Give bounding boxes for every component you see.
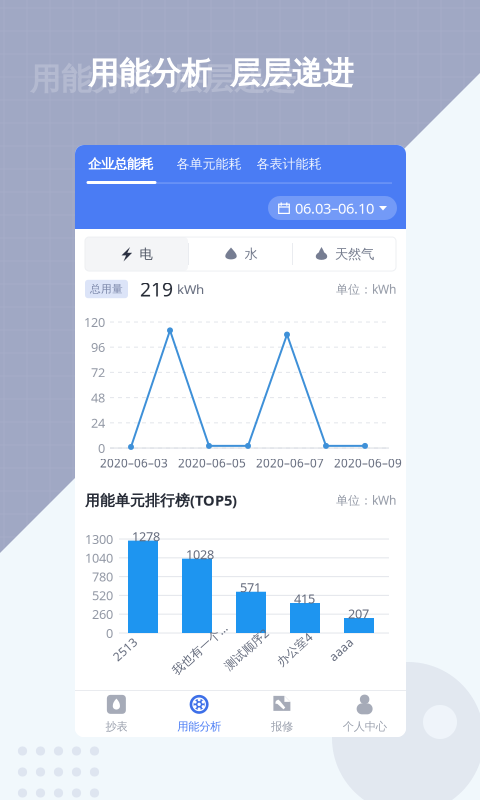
staticText: 207 (348, 605, 369, 622)
staticText: 天然气 (335, 246, 374, 262)
staticText: 96 (91, 339, 105, 356)
button[interactable]: 抄表 (75, 690, 158, 737)
button[interactable]: 报修 (240, 690, 323, 737)
staticText: 各表计能耗 (256, 156, 321, 172)
staticText: 2020–06–07 (256, 455, 324, 471)
staticText: 260 (92, 606, 113, 623)
button[interactable]: 06.03–06.10 (268, 196, 397, 220)
staticText: 1278 (132, 528, 160, 545)
staticText: 1028 (186, 546, 214, 563)
staticText: 我也有一个… (165, 641, 234, 657)
staticText: 用能单元排行榜(TOP5) (85, 490, 237, 510)
staticText: 各单元能耗 (176, 156, 241, 172)
staticText: 219 (140, 276, 173, 302)
staticText: 办公室4 (273, 641, 316, 657)
staticText: 520 (92, 587, 113, 604)
button[interactable]: 电 (85, 237, 188, 271)
staticText: 06.03–06.10 (295, 198, 374, 218)
button[interactable]: 各表计能耗 (256, 152, 324, 176)
staticText: 水 (244, 246, 257, 262)
button[interactable]: 天然气 (293, 237, 396, 271)
staticText: 415 (294, 590, 315, 607)
staticText: 单位：kWh (336, 492, 396, 508)
staticText: 120 (84, 313, 105, 331)
button[interactable]: 个人中心 (323, 690, 406, 737)
staticText: 0 (98, 439, 105, 457)
staticText: 抄表 (105, 719, 127, 734)
staticText: 个人中心 (343, 719, 387, 734)
staticText: 报修 (271, 719, 293, 734)
staticText: 2020–06–05 (178, 455, 246, 471)
staticText: 571 (240, 579, 261, 596)
staticText: 780 (92, 568, 113, 585)
staticText: 用能分析 层层递进 (88, 54, 354, 93)
staticText: 单位：kWh (336, 281, 396, 297)
staticText: 72 (91, 364, 105, 381)
staticText: 48 (91, 389, 105, 406)
staticText: 2020–06–09 (334, 455, 402, 471)
staticText: 1040 (85, 549, 113, 566)
staticText: 总用量 (90, 282, 123, 296)
button[interactable]: 各单元能耗 (176, 152, 244, 176)
staticText: 企业总能耗 (88, 156, 153, 172)
staticText: 24 (91, 414, 105, 431)
staticText: aaaa (327, 641, 355, 657)
staticText: 用能分析 层层递进 (30, 60, 296, 99)
staticText: 用能分析 (177, 719, 221, 734)
button[interactable]: 用能分析 (158, 690, 241, 737)
staticText: 测试顺序2 (219, 641, 274, 657)
staticText: 1300 (85, 530, 113, 548)
staticText: 2020–06–03 (100, 455, 168, 471)
staticText: 2513 (111, 641, 139, 657)
staticText: 电 (139, 246, 152, 262)
button[interactable]: 企业总能耗 (88, 152, 164, 176)
button[interactable]: 水 (189, 237, 293, 271)
staticText: kWh (177, 280, 204, 298)
staticText: 0 (106, 624, 113, 642)
